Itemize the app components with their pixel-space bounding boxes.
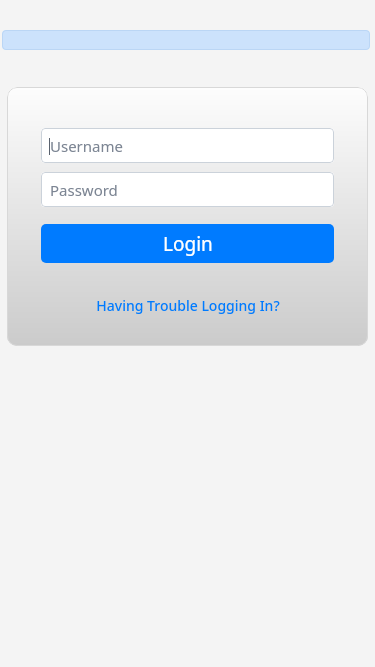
- button[interactable]: Login: [41, 224, 334, 263]
- staticText: Having Trouble Logging In?: [96, 296, 280, 315]
- button[interactable]: Password: [41, 172, 334, 207]
- staticText: Password: [50, 180, 118, 200]
- staticText: Username: [50, 136, 123, 156]
- button[interactable]: Having Trouble Logging In?: [41, 293, 334, 317]
- staticText: Login: [163, 231, 213, 257]
- button[interactable]: Username: [41, 128, 334, 163]
